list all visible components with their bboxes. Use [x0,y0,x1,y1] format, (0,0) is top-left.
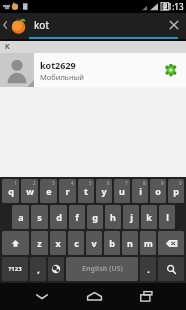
button[interactable]: Delete [158,231,184,255]
staticText: 5 [89,180,92,186]
staticText: g [92,211,98,223]
button[interactable]: i [132,179,148,203]
button[interactable]: u [114,179,130,203]
button[interactable]: Navigate up [0,13,30,37]
staticText: . [147,263,150,275]
staticText: i [139,185,142,197]
button[interactable]: c [68,231,84,255]
staticText: 3 [52,180,55,186]
staticText: English (US) [82,264,123,274]
staticText: p [173,185,179,197]
staticText: ?123 [8,265,22,273]
staticText: 0 [179,180,182,186]
button[interactable]: a [12,205,29,229]
staticText: K [5,42,10,52]
staticText: , [37,263,40,275]
staticText: b [109,237,115,249]
button[interactable]: s [31,205,48,229]
staticText: d [56,211,62,223]
button[interactable]: p [168,179,184,203]
button[interactable]: g [87,205,103,229]
staticText: q [8,185,14,197]
button[interactable]: q [2,179,19,203]
staticText: 2 [33,180,36,186]
staticText: 6 [107,180,110,186]
staticText: Мобильный [40,72,84,82]
staticText: w [26,185,34,197]
button[interactable]: f [69,205,85,229]
button[interactable]: v [86,231,102,255]
button[interactable]: kot [34,13,162,37]
button[interactable]: , [30,257,46,281]
button[interactable]: n [122,231,138,255]
button[interactable]: r [59,179,76,203]
staticText: l [166,211,169,223]
button[interactable]: x [50,231,66,255]
staticText: j [130,211,133,223]
button[interactable]: Hide keyboard [23,283,60,310]
staticText: 1 [14,180,17,186]
button[interactable]: z [31,231,48,255]
staticText: kot [34,18,49,32]
staticText: s [37,211,42,223]
button[interactable]: b [104,231,120,255]
button[interactable]: d [50,205,67,229]
staticText: o [155,185,161,197]
button[interactable]: English (US) [66,257,138,281]
staticText: x [55,237,61,249]
button[interactable]: Clear search [162,13,186,37]
button[interactable]: Online status [156,55,186,85]
button[interactable]: Home [76,283,112,310]
button[interactable]: y [96,179,112,203]
staticText: u [119,185,125,197]
staticText: kot2629 [40,59,76,71]
staticText: 4 [71,180,74,186]
staticText: z [37,237,42,249]
button[interactable]: h [105,205,121,229]
staticText: r [65,185,70,197]
staticText: n [127,237,133,249]
button[interactable]: w [21,179,38,203]
button[interactable]: kot2629 [0,53,186,87]
button[interactable]: o [150,179,166,203]
button[interactable]: Shift [2,231,29,255]
staticText: a [18,211,24,223]
staticText: 7 [125,180,128,186]
button[interactable]: l [159,205,175,229]
button[interactable]: Change keyboard [48,257,64,281]
staticText: 9 [161,180,164,186]
staticText: k [146,211,152,223]
staticText: e [46,185,52,197]
button[interactable]: e [40,179,57,203]
staticText: h [110,211,116,223]
button[interactable]: j [123,205,139,229]
staticText: v [91,237,97,249]
button[interactable]: t [78,179,94,203]
staticText: 8 [143,180,146,186]
button[interactable]: k [141,205,157,229]
button[interactable]: ?123 [2,257,28,281]
staticText: c [74,237,79,249]
button[interactable]: Recent apps [128,283,164,310]
staticText: f [75,211,79,223]
staticText: y [101,185,107,197]
button[interactable]: Search [158,257,184,281]
button[interactable]: . [140,257,156,281]
button[interactable]: m [140,231,156,255]
staticText: m [144,237,153,249]
staticText: 21:13 [163,1,184,12]
staticText: t [84,185,88,197]
